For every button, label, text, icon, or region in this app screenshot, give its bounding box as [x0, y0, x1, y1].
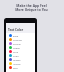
- staticText: More Unique to You: [15, 7, 48, 11]
- staticText: Yellow: [13, 62, 21, 65]
- button[interactable]: Blue: [6, 33, 35, 37]
- staticText: Pink: [13, 50, 19, 53]
- button[interactable]: Green: [6, 45, 35, 49]
- button[interactable]: Purple: [6, 41, 35, 45]
- button[interactable]: Yellow: [6, 61, 35, 65]
- staticText: Blue: [13, 34, 19, 37]
- staticText: Green: [13, 46, 21, 49]
- button[interactable]: Red: [6, 65, 35, 69]
- staticText: Red: [13, 66, 18, 69]
- staticText: Text Color: [8, 28, 23, 32]
- staticText: Orange: [13, 38, 22, 41]
- button[interactable]: Orange: [6, 37, 35, 41]
- staticText: Indigo: [13, 58, 21, 61]
- button[interactable]: Pink: [6, 49, 35, 53]
- staticText: Purple: [13, 42, 21, 45]
- button[interactable]: Cyan: [6, 53, 35, 57]
- button[interactable]: Indigo: [6, 57, 35, 61]
- staticText: Cyan: [13, 54, 19, 57]
- staticText: Make the App Feel: [16, 3, 47, 7]
